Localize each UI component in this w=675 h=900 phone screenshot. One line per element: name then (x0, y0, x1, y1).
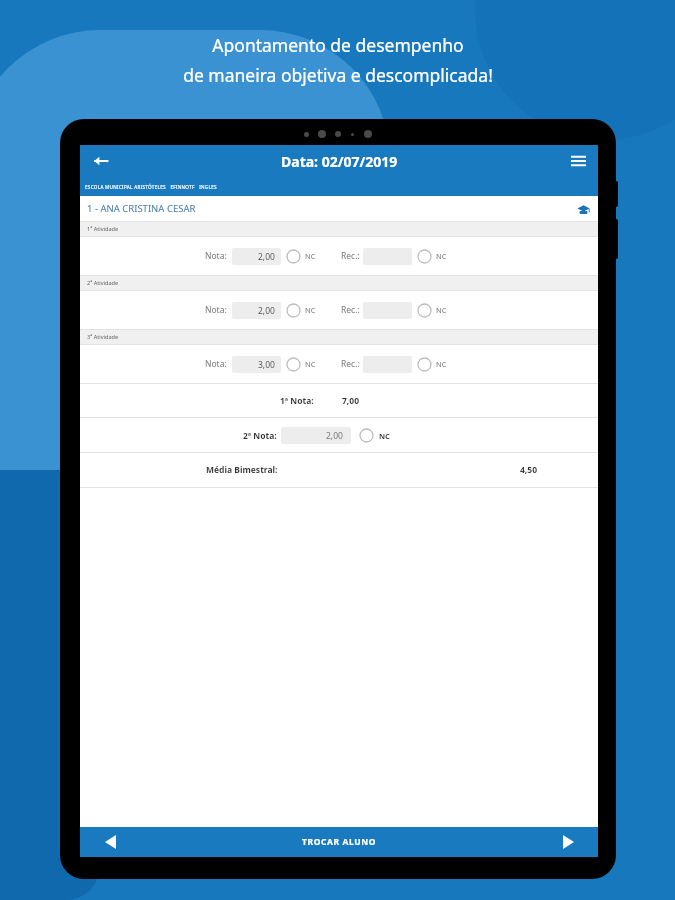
button[interactable]: NC nota (286, 357, 301, 372)
staticText: Data: 02/07/2019 (281, 152, 398, 171)
staticText: Média Bimestral: (206, 464, 278, 476)
staticText: 2,00 (258, 305, 275, 317)
staticText: Nota: (205, 358, 227, 370)
staticText: 7,00 (342, 395, 360, 407)
button[interactable]: 2,00 (232, 248, 281, 265)
staticText: 2ª Atividade (87, 279, 119, 287)
staticText: 2,00 (258, 251, 275, 263)
button[interactable]: Back (86, 146, 116, 176)
staticText: NC (436, 359, 447, 369)
button[interactable]: Previous student (80, 827, 140, 857)
button[interactable]: 2,00 (232, 302, 281, 319)
staticText: Apontamento de desempenho (212, 33, 464, 57)
button[interactable]: NC nota (286, 249, 301, 264)
staticText: NC (305, 359, 316, 369)
button[interactable]: NC recuperação (417, 357, 432, 372)
staticText: NC (305, 251, 316, 261)
staticText: 3ª Atividade (87, 333, 119, 341)
staticText: NC (305, 305, 316, 315)
button[interactable]: TROCAR ALUNO (140, 827, 538, 857)
staticText: 4,50 (520, 464, 538, 476)
staticText: ESCOLA MUNICIPAL ARISTÓTELES EFINNOTF IN… (85, 184, 217, 190)
button[interactable]: 1 - ANA CRISTINA CESAR (80, 196, 598, 221)
staticText: NC (379, 431, 390, 441)
staticText: Rec.: (341, 304, 360, 316)
staticText: Nota: (205, 304, 227, 316)
button[interactable]: NC (359, 428, 374, 443)
staticText: TROCAR ALUNO (302, 836, 377, 848)
button[interactable]: NC nota (286, 303, 301, 318)
staticText: Nota: (205, 250, 227, 262)
staticText: 2,00 (326, 430, 343, 442)
button[interactable]: 2,00 (281, 427, 351, 444)
staticText: Rec.: (341, 250, 360, 262)
staticText: 1ª Nota: (280, 395, 314, 407)
button[interactable]: Menu (564, 147, 592, 175)
button[interactable]: NC recuperação (417, 303, 432, 318)
staticText: NC (436, 305, 447, 315)
staticText: 1 - ANA CRISTINA CESAR (87, 202, 196, 215)
staticText: de maneira objetiva e descomplicada! (183, 63, 493, 87)
staticText: 3,00 (258, 359, 275, 371)
staticText: 2ª Nota: (243, 430, 277, 442)
staticText: Rec.: (341, 358, 360, 370)
staticText: NC (436, 251, 447, 261)
button[interactable]: Next student (538, 827, 598, 857)
staticText: 1ª Atividade (87, 225, 119, 233)
button[interactable]: 3,00 (232, 356, 281, 373)
button[interactable]: NC recuperação (417, 249, 432, 264)
